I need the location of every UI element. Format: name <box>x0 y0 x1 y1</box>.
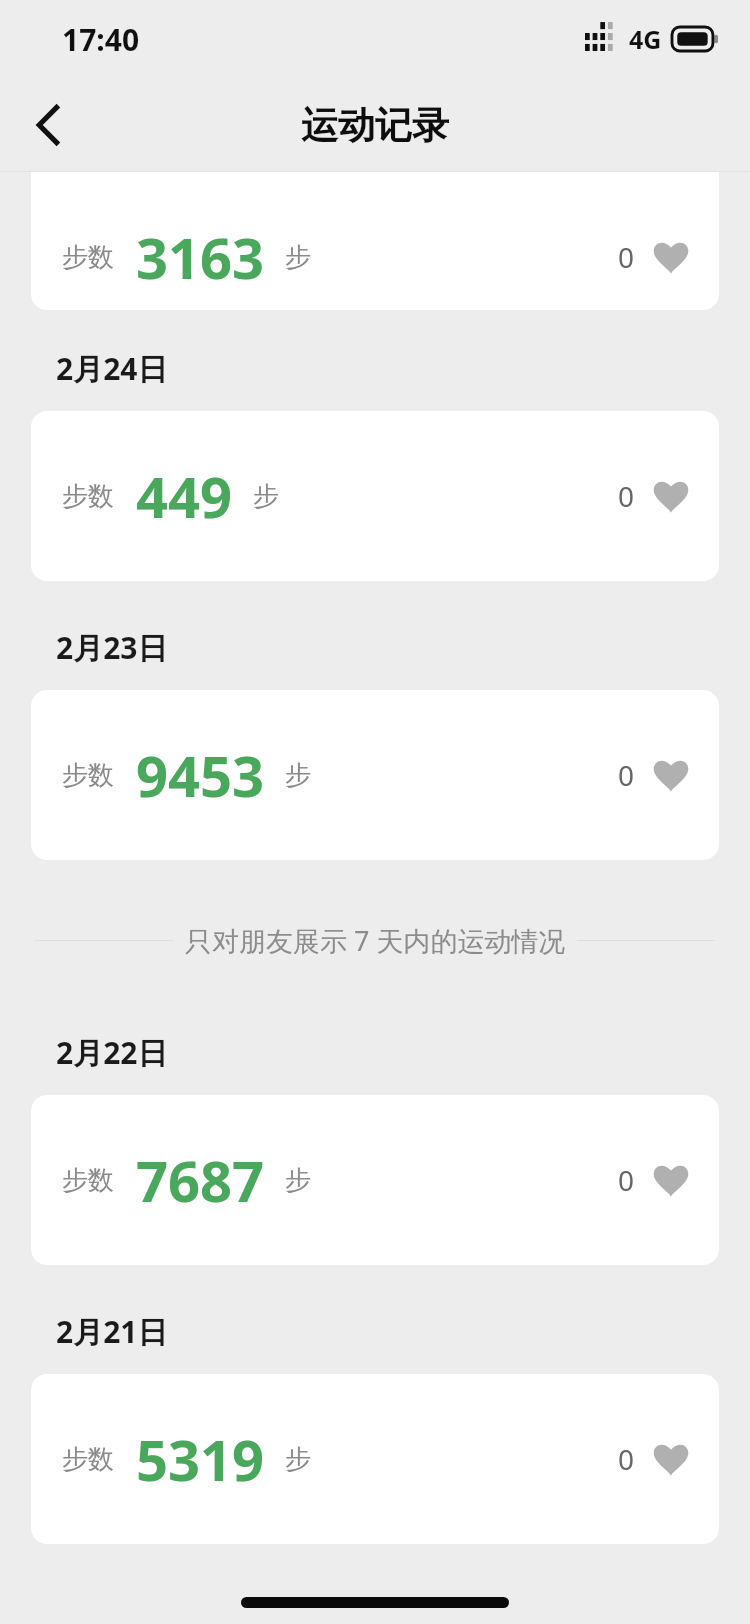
staticText: 17:40 <box>62 19 140 60</box>
button[interactable]: 步数 <box>31 172 719 310</box>
staticText: 步数 <box>62 1443 114 1476</box>
staticText: 步 <box>285 759 311 792</box>
staticText: 449 <box>136 458 233 534</box>
staticText: 0 <box>618 756 635 794</box>
staticText: 2月22日 <box>56 1032 168 1073</box>
staticText: 步 <box>285 1443 311 1476</box>
staticText: 2月23日 <box>56 627 168 668</box>
button[interactable]: 点赞 <box>618 477 689 515</box>
staticText: 4G <box>629 22 662 56</box>
button[interactable]: 步数 <box>31 411 719 581</box>
button[interactable]: 步数 <box>31 1374 719 1544</box>
button[interactable]: 点赞 <box>618 1440 689 1478</box>
staticText: 步 <box>253 480 279 513</box>
staticText: 步 <box>285 241 311 274</box>
staticText: 5319 <box>136 1421 265 1497</box>
button[interactable]: 点赞 <box>618 238 689 276</box>
staticText: 2月21日 <box>56 1311 168 1352</box>
staticText: 9453 <box>136 737 265 813</box>
staticText: 步数 <box>62 480 114 513</box>
staticText: 0 <box>618 1161 635 1199</box>
button[interactable]: 步数 <box>31 690 719 860</box>
staticText: 步数 <box>62 1164 114 1197</box>
staticText: 3163 <box>136 219 265 295</box>
staticText: 步数 <box>62 759 114 792</box>
staticText: 2月24日 <box>56 348 168 389</box>
staticText: 步数 <box>62 241 114 274</box>
staticText: 0 <box>618 238 635 276</box>
staticText: 0 <box>618 477 635 515</box>
button[interactable]: 步数 <box>31 1095 719 1265</box>
staticText: 运动记录 <box>301 102 449 149</box>
button[interactable]: 返回 <box>14 89 86 161</box>
staticText: 只对朋友展示 7 天内的运动情况 <box>185 922 566 959</box>
staticText: 0 <box>618 1440 635 1478</box>
button[interactable]: 点赞 <box>618 1161 689 1199</box>
button[interactable]: 点赞 <box>618 756 689 794</box>
staticText: 7687 <box>136 1142 265 1218</box>
staticText: 步 <box>285 1164 311 1197</box>
